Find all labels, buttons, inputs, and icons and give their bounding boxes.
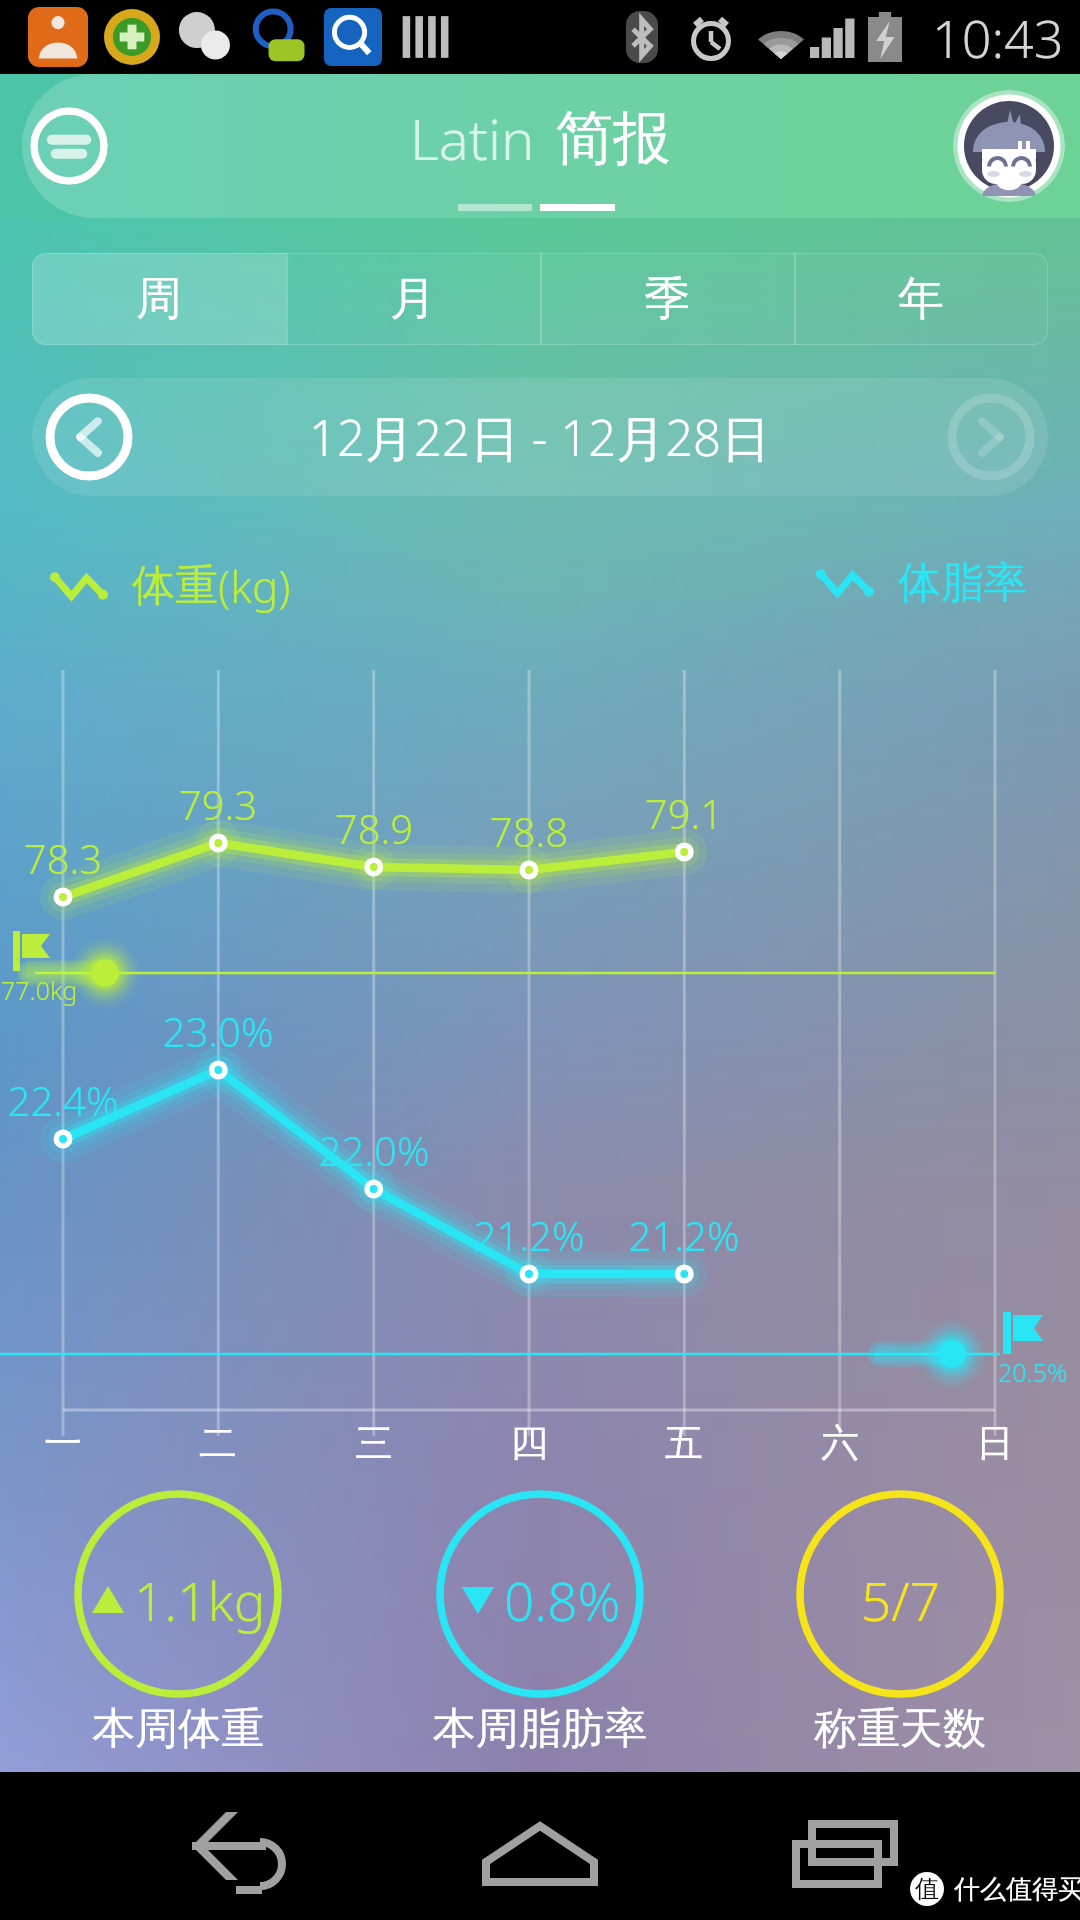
- staticText: 23.0%: [138, 1004, 298, 1058]
- staticText: 21.2%: [449, 1208, 609, 1262]
- staticText: 简报: [555, 102, 671, 175]
- staticText: 一: [18, 1419, 108, 1467]
- staticText: 体脂率: [898, 556, 1027, 610]
- staticText: (kg): [218, 556, 291, 616]
- staticText: 1.1kg: [134, 1564, 266, 1636]
- button[interactable]: 0.8%: [380, 1480, 700, 1770]
- staticText: 78.3: [0, 831, 133, 885]
- staticText: 四: [484, 1419, 574, 1467]
- staticText: 10:43: [932, 2, 1064, 73]
- button[interactable]: Previous week: [45, 393, 133, 481]
- staticText: 月: [390, 270, 436, 328]
- staticText: 周: [136, 270, 182, 328]
- button[interactable]: Back: [170, 1820, 320, 1890]
- button[interactable]: 月: [286, 253, 540, 345]
- staticText: 12月22日 - 12月28日: [309, 404, 771, 471]
- button[interactable]: 周: [32, 253, 286, 345]
- staticText: Latin: [410, 100, 535, 176]
- staticText: 年: [898, 270, 944, 328]
- staticText: 78.9: [304, 801, 444, 855]
- staticText: 78.8: [459, 804, 599, 858]
- staticText: 79.1: [614, 786, 754, 840]
- button[interactable]: 季: [540, 253, 794, 345]
- staticText: 77.0kg: [1, 973, 78, 1007]
- staticText: 本周体重: [18, 1702, 338, 1756]
- button[interactable]: Menu: [30, 107, 108, 185]
- staticText: 五: [639, 1419, 729, 1467]
- button[interactable]: 5/7: [740, 1480, 1060, 1770]
- button[interactable]: Next week: [947, 393, 1035, 481]
- staticText: 22.0%: [294, 1123, 454, 1177]
- button[interactable]: Profile: [953, 90, 1065, 202]
- staticText: 六: [795, 1419, 885, 1467]
- staticText: 三: [329, 1419, 419, 1467]
- button[interactable]: Home: [480, 1820, 600, 1890]
- staticText: 21.2%: [604, 1208, 764, 1262]
- button[interactable]: 年: [794, 253, 1048, 345]
- staticText: 称重天数: [740, 1702, 1060, 1756]
- staticText: 值: [915, 1874, 939, 1904]
- staticText: 体重: [132, 559, 218, 613]
- staticText: 5/7: [861, 1564, 940, 1636]
- staticText: 22.4%: [0, 1073, 143, 1127]
- staticText: 什么值得买: [954, 1873, 1080, 1906]
- staticText: 季: [644, 270, 690, 328]
- staticText: 本周脂肪率: [380, 1702, 700, 1756]
- staticText: 日: [950, 1419, 1040, 1467]
- button[interactable]: 1.1kg: [18, 1480, 338, 1770]
- staticText: 79.3: [148, 777, 288, 831]
- staticText: 0.8%: [504, 1564, 621, 1636]
- button[interactable]: Recent apps: [790, 1818, 910, 1890]
- staticText: 20.5%: [998, 1355, 1068, 1389]
- staticText: 二: [173, 1419, 263, 1467]
